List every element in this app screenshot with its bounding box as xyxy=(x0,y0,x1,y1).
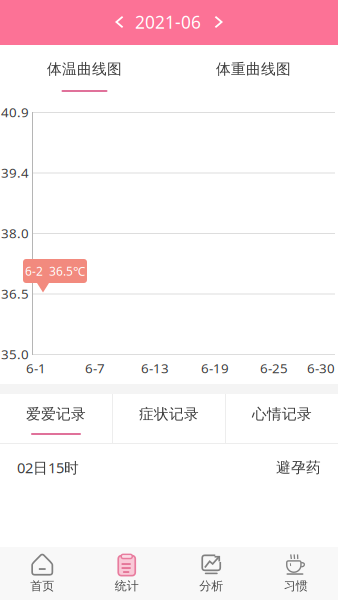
button[interactable]: 统计 xyxy=(84,547,169,600)
staticText: 体重曲线图 xyxy=(216,60,291,78)
staticText: 6-30 xyxy=(307,359,335,377)
button[interactable]: Previous month xyxy=(106,7,132,37)
staticText: 统计 xyxy=(115,579,139,593)
staticText: 2021-06 xyxy=(135,10,201,33)
staticText: 6-25 xyxy=(260,359,288,377)
button[interactable]: 02日15时 xyxy=(0,444,338,491)
staticText: 首页 xyxy=(30,579,54,593)
staticText: 6-7 xyxy=(85,359,105,377)
staticText: 避孕药 xyxy=(276,458,321,476)
staticText: 6-1 xyxy=(26,359,46,377)
staticText: 02日15时 xyxy=(17,458,79,477)
staticText: 症状记录 xyxy=(139,405,199,423)
staticText: 38.0 xyxy=(1,224,29,242)
button[interactable]: 体重曲线图 xyxy=(169,45,338,95)
staticText: 39.4 xyxy=(1,164,29,181)
button[interactable]: Next month xyxy=(205,7,231,37)
staticText: 体温曲线图 xyxy=(47,60,122,78)
staticText: 36.5 xyxy=(1,285,29,302)
staticText: 6-2 36.5℃ xyxy=(25,263,85,279)
button[interactable]: 习惯 xyxy=(253,547,338,600)
button[interactable]: 体温曲线图 xyxy=(0,45,169,95)
button[interactable]: 首页 xyxy=(0,547,84,600)
staticText: 6-19 xyxy=(201,359,229,377)
staticText: 6-13 xyxy=(141,359,169,377)
staticText: 习惯 xyxy=(284,579,308,593)
staticText: 爱爱记录 xyxy=(26,405,86,423)
button[interactable]: 心情记录 xyxy=(226,394,338,443)
button[interactable]: 爱爱记录 xyxy=(0,394,112,443)
staticText: 分析 xyxy=(199,579,223,593)
staticText: 35.0 xyxy=(1,345,29,363)
staticText: 40.9 xyxy=(1,103,29,121)
staticText: 心情记录 xyxy=(252,405,312,423)
button[interactable]: 分析 xyxy=(169,547,253,600)
button[interactable]: 症状记录 xyxy=(113,394,225,443)
